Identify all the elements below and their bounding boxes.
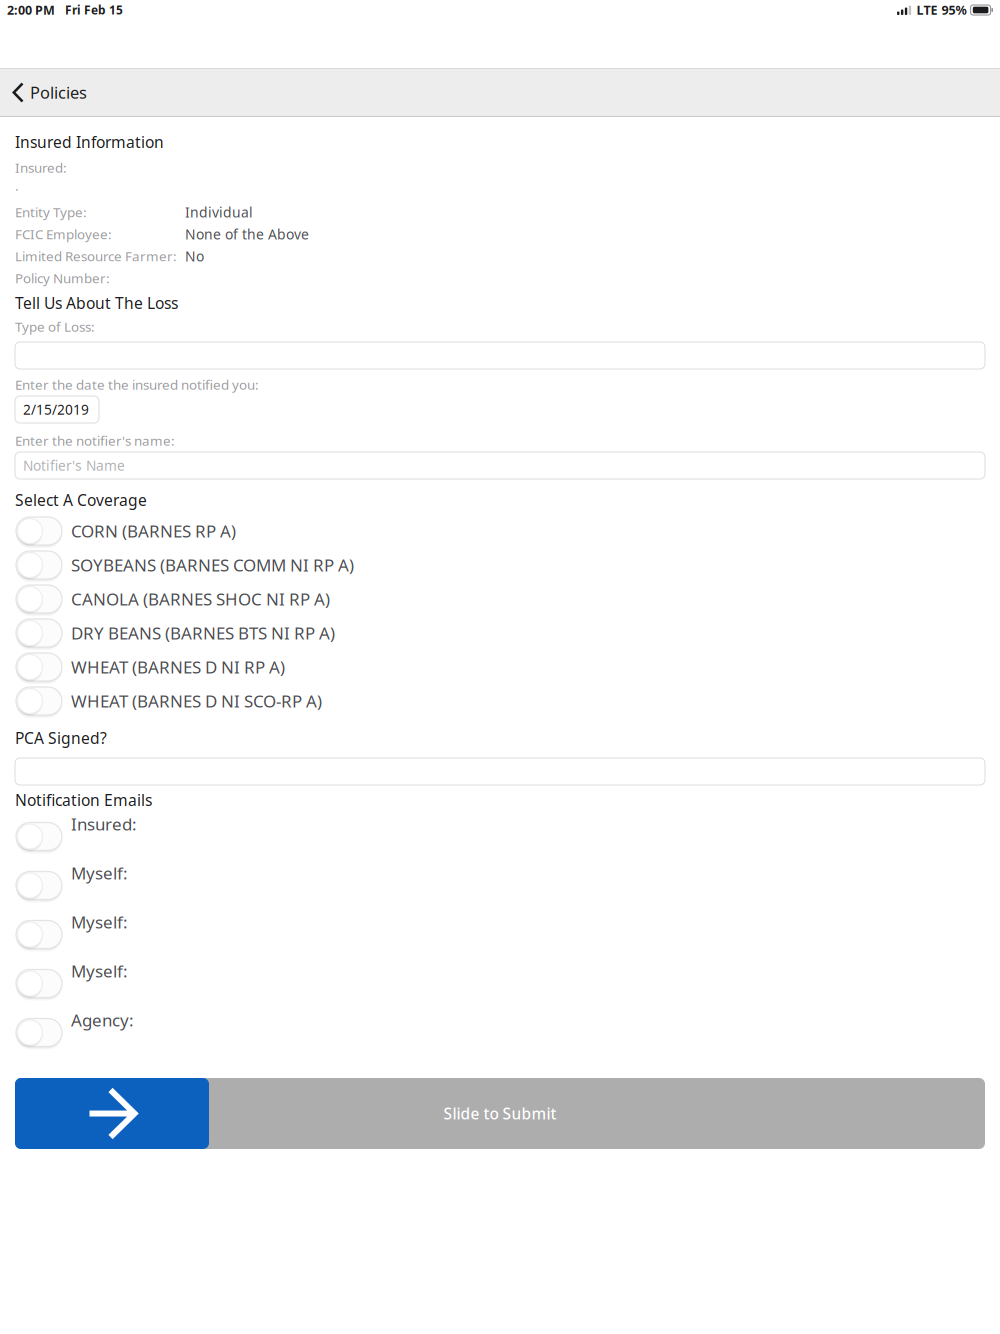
- staticText: Insured:: [15, 158, 67, 177]
- staticText: Insured:: [71, 812, 137, 836]
- staticText: 2:00 PM: [7, 1, 55, 19]
- staticText: 2/15/2019: [23, 400, 89, 419]
- button[interactable]: Myself:: [0, 913, 1000, 962]
- staticText: Insured Information: [15, 131, 164, 153]
- button[interactable]: Slide to Submit: [15, 1078, 985, 1149]
- staticText: Myself:: [71, 910, 128, 934]
- button[interactable]: Notifier's Name: [15, 452, 985, 479]
- staticText: FCIC Employee:: [15, 225, 112, 243]
- button[interactable]: DRY BEANS (BARNES BTS NI RP A): [0, 616, 1000, 650]
- staticText: Notification Emails: [15, 789, 152, 811]
- staticText: SOYBEANS (BARNES COMM NI RP A): [71, 553, 354, 577]
- staticText: CORN (BARNES RP A): [71, 519, 236, 543]
- button[interactable]: Insured:: [0, 815, 1000, 864]
- button[interactable]: Date insured notified you: [15, 396, 99, 423]
- button[interactable]: CORN (BARNES RP A): [0, 514, 1000, 548]
- staticText: Myself:: [71, 861, 128, 885]
- staticText: Type of Loss:: [15, 317, 95, 336]
- button[interactable]: Back to Policies: [0, 69, 97, 116]
- staticText: CANOLA (BARNES SHOC NI RP A): [71, 587, 330, 611]
- button[interactable]: Type of Loss: [15, 342, 985, 369]
- staticText: None of the Above: [185, 225, 309, 243]
- staticText: Notifier's Name: [23, 456, 125, 475]
- staticText: Entity Type:: [15, 203, 87, 221]
- button[interactable]: CANOLA (BARNES SHOC NI RP A): [0, 582, 1000, 616]
- staticText: Select A Coverage: [15, 489, 147, 511]
- staticText: Individual: [185, 203, 253, 221]
- staticText: Myself:: [71, 959, 128, 983]
- staticText: Enter the date the insured notified you:: [15, 375, 259, 394]
- staticText: Policy Number:: [15, 269, 110, 287]
- button[interactable]: PCA Signed: [15, 758, 985, 785]
- staticText: .: [15, 176, 19, 195]
- staticText: Slide to Submit: [443, 1103, 556, 1124]
- staticText: Tell Us About The Loss: [15, 292, 178, 314]
- staticText: Agency:: [71, 1008, 134, 1032]
- button[interactable]: Agency:: [0, 1011, 1000, 1060]
- staticText: No: [185, 247, 204, 265]
- staticText: WHEAT (BARNES D NI RP A): [71, 655, 285, 679]
- staticText: Policies: [30, 81, 87, 104]
- button[interactable]: WHEAT (BARNES D NI SCO-RP A): [0, 684, 1000, 718]
- button[interactable]: SOYBEANS (BARNES COMM NI RP A): [0, 548, 1000, 582]
- staticText: LTE: [917, 1, 938, 19]
- staticText: Enter the notifier's name:: [15, 431, 175, 450]
- staticText: PCA Signed?: [15, 727, 107, 749]
- button[interactable]: Myself:: [0, 962, 1000, 1011]
- staticText: Limited Resource Farmer:: [15, 247, 177, 265]
- button[interactable]: WHEAT (BARNES D NI RP A): [0, 650, 1000, 684]
- staticText: DRY BEANS (BARNES BTS NI RP A): [71, 621, 335, 645]
- staticText: 95%: [942, 1, 967, 19]
- staticText: WHEAT (BARNES D NI SCO-RP A): [71, 689, 322, 713]
- staticText: Fri Feb 15: [65, 2, 123, 18]
- button[interactable]: Myself:: [0, 864, 1000, 913]
